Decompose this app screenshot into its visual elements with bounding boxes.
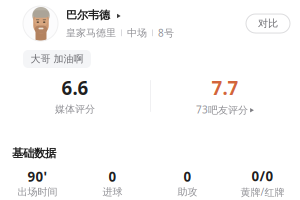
staticText: 黄牌/红牌 [240,185,284,199]
staticText: 0 [108,167,116,186]
staticText: 6.6 [61,75,88,100]
staticText: 基础数据 [12,146,56,160]
staticText: 出场时间 [17,186,57,198]
staticText: 中场 [127,26,147,39]
staticText: 巴尔韦德 [66,8,110,22]
staticText: 7.7 [211,75,238,100]
button[interactable]: 7.7 [175,75,275,116]
button[interactable]: 巴尔韦德 [66,8,114,22]
staticText: 0/0 [251,167,273,185]
staticText: 大哥 加油啊 [30,53,83,65]
staticText: 媒体评分 [55,103,95,115]
staticText: 皇家马德里 [66,26,116,39]
staticText: 助攻 [177,186,197,198]
staticText: 73吧友评分 [196,103,248,116]
staticText: 对比 [258,17,278,30]
button[interactable]: 对比 [246,14,290,33]
staticText: 进球 [102,186,122,198]
staticText: 8号 [158,26,174,40]
staticText: 90' [27,167,47,186]
staticText: 0 [183,167,191,186]
